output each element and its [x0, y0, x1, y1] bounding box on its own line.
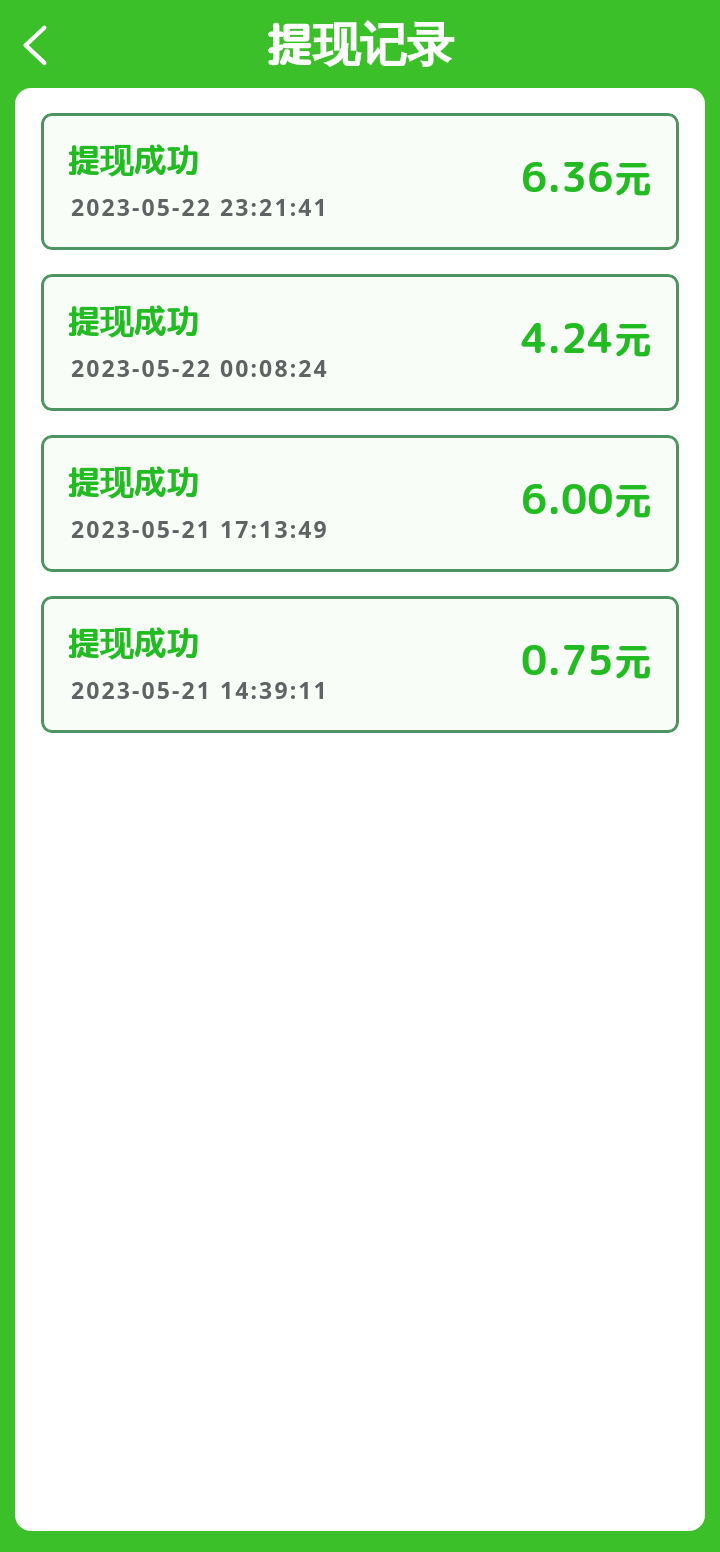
staticText: 2023-05-22 00:08:24 — [71, 352, 329, 383]
staticText: 2023-05-22 23:21:41 — [71, 191, 329, 222]
staticText: 6.36 — [521, 148, 614, 205]
staticText: 提现成功 — [67, 137, 199, 183]
staticText: 6.00 — [521, 470, 614, 527]
staticText: 元 — [614, 635, 653, 688]
staticText: 0.75 — [521, 631, 614, 688]
staticText: 2023-05-21 17:13:49 — [71, 513, 329, 544]
staticText: 元 — [614, 474, 653, 527]
button[interactable]: 提现成功 — [41, 596, 679, 733]
staticText: 提现成功 — [67, 298, 199, 344]
staticText: 提现成功 — [67, 459, 199, 505]
staticText: 元 — [614, 152, 653, 205]
button[interactable]: 提现成功 — [41, 274, 679, 411]
staticText: 提现记录 — [266, 10, 454, 76]
button[interactable]: 提现成功 — [41, 113, 679, 250]
staticText: 元 — [614, 313, 653, 366]
button[interactable]: Back — [6, 16, 62, 72]
staticText: 提现成功 — [67, 620, 199, 666]
button[interactable]: 提现成功 — [41, 435, 679, 572]
staticText: 4.24 — [521, 309, 614, 366]
staticText: 2023-05-21 14:39:11 — [71, 674, 329, 705]
